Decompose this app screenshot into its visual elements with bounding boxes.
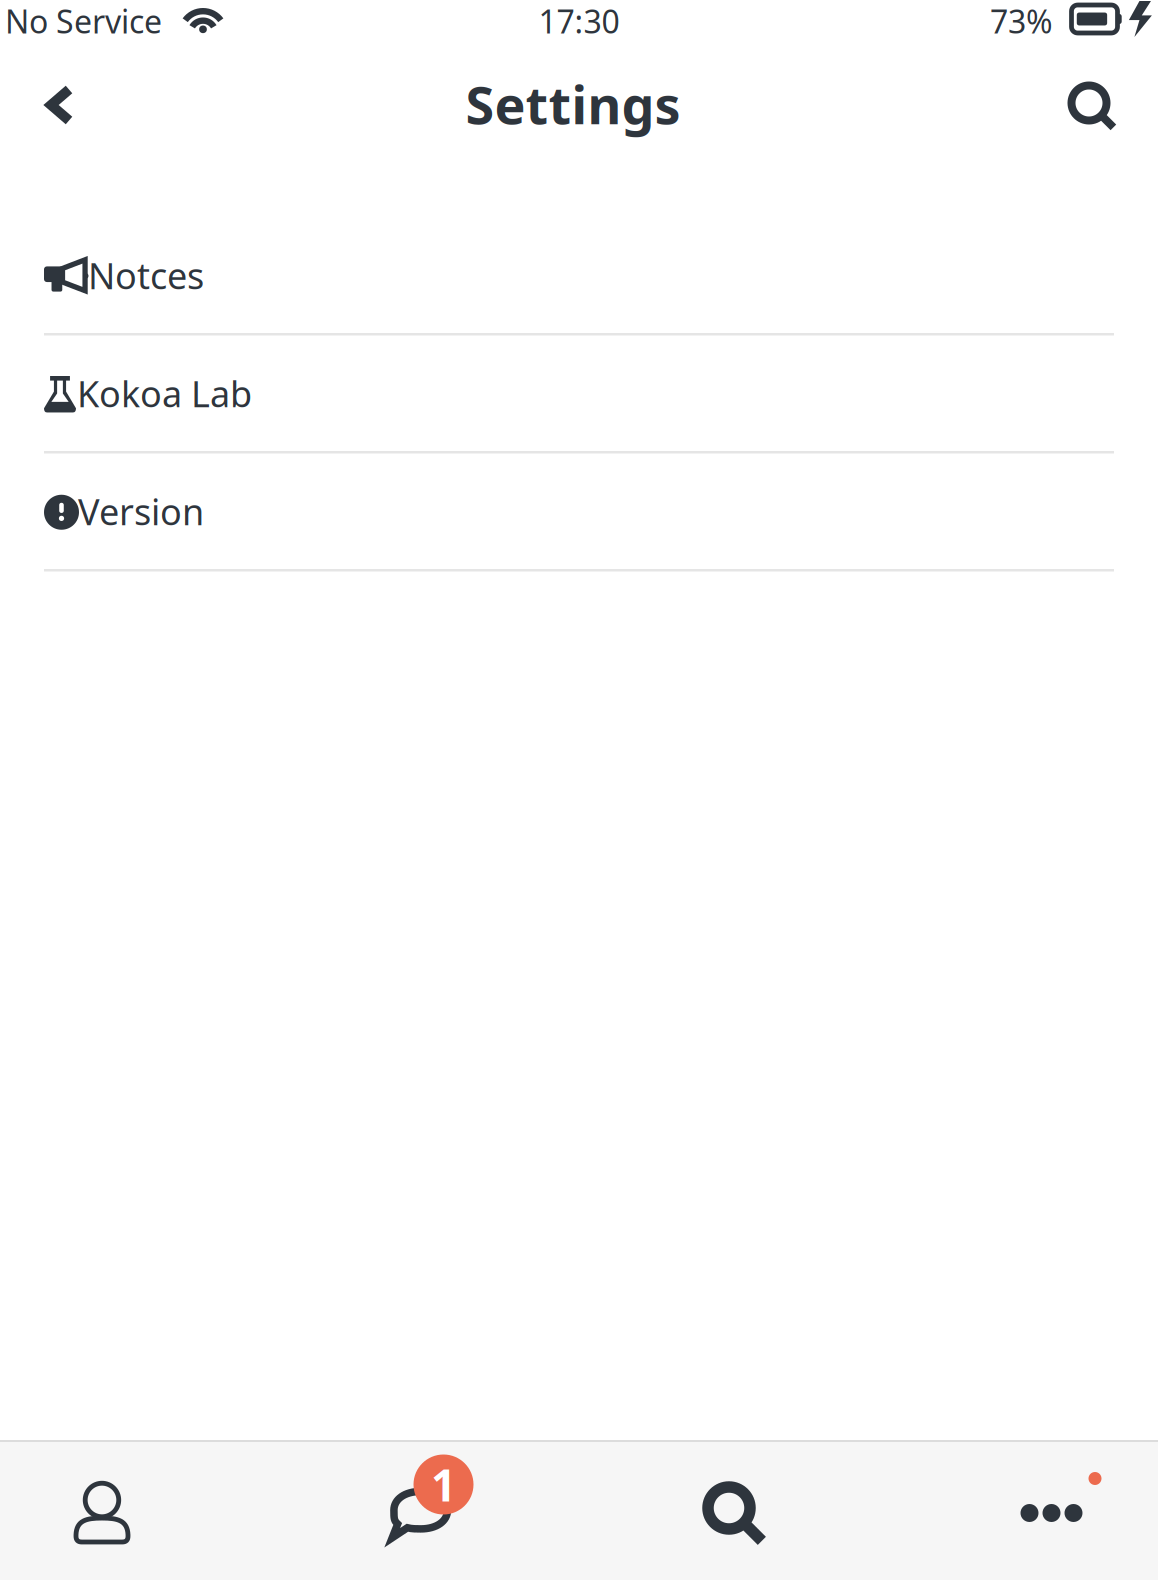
button[interactable]: Back (5, 52, 115, 157)
staticText: Kokoa Lab (77, 369, 252, 417)
button[interactable]: Notces (0, 217, 1158, 335)
staticText: No Service (5, 0, 162, 42)
staticText: Settings (465, 69, 680, 139)
button[interactable]: Search (643, 1453, 843, 1580)
button[interactable]: Search (1040, 56, 1150, 161)
staticText: 1 (431, 1455, 456, 1514)
button[interactable]: Profile (2, 1431, 202, 1569)
staticText: 17:30 (538, 0, 619, 42)
staticText: 73% (990, 0, 1053, 42)
button[interactable]: More (961, 1428, 1158, 1566)
button[interactable]: Kokoa Lab (0, 335, 1158, 453)
staticText: Notces (88, 251, 204, 299)
button[interactable]: Chats (328, 1429, 528, 1567)
staticText: Version (78, 487, 204, 535)
button[interactable]: Version (0, 453, 1158, 571)
